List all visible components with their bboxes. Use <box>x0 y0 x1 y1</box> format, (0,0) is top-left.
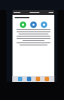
button[interactable]: App <box>36 77 40 81</box>
button[interactable]: App <box>27 77 31 81</box>
button[interactable]: Action <box>20 21 26 28</box>
button[interactable]: App <box>18 77 22 81</box>
button[interactable]: Action <box>30 21 37 28</box>
button[interactable]: Action <box>41 21 47 28</box>
button[interactable]: App <box>45 77 49 81</box>
